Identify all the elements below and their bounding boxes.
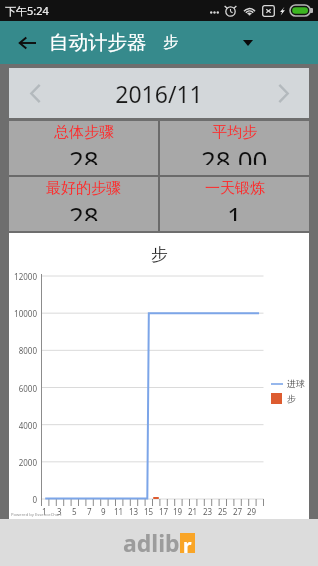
staticText: 4000: [9, 420, 37, 431]
button[interactable]: Previous month: [9, 68, 61, 118]
button[interactable]: Back: [0, 21, 49, 64]
staticText: 一天锻炼: [205, 179, 265, 198]
staticText: 12000: [9, 271, 37, 282]
staticText: 13: [129, 506, 139, 517]
staticText: 步: [287, 393, 296, 404]
staticText: 25: [218, 506, 228, 517]
staticText: 27: [233, 506, 243, 517]
staticText: 7: [87, 506, 92, 517]
staticText: 29: [247, 506, 257, 517]
staticText: 23: [203, 506, 213, 517]
staticText: 11: [114, 506, 124, 517]
button[interactable]: 一天锻炼: [160, 177, 309, 231]
button[interactable]: 最好的步骤: [9, 177, 158, 231]
staticText: 进球: [287, 378, 305, 389]
staticText: r: [183, 533, 192, 553]
staticText: 0: [9, 494, 37, 505]
staticText: 28.00: [201, 142, 268, 165]
staticText: 28: [69, 198, 99, 221]
staticText: 下午5:24: [5, 3, 49, 18]
staticText: 3: [57, 506, 62, 517]
staticText: 1: [42, 506, 47, 517]
staticText: 19: [173, 506, 183, 517]
staticText: 6000: [9, 383, 37, 394]
staticText: 最好的步骤: [46, 179, 121, 198]
staticText: 2000: [9, 457, 37, 468]
staticText: 平均步: [212, 123, 257, 142]
button[interactable]: 总体步骤: [9, 121, 158, 175]
staticText: 21: [188, 506, 198, 517]
staticText: adlib: [123, 527, 180, 558]
button[interactable]: 步: [163, 33, 178, 52]
staticText: 8000: [9, 345, 37, 356]
staticText: 5: [72, 506, 77, 517]
staticText: 总体步骤: [54, 123, 114, 142]
button[interactable]: Next month: [257, 68, 309, 118]
button[interactable]: More options: [178, 21, 318, 64]
staticText: Powered by EssenceChart: [11, 512, 62, 518]
staticText: 15: [144, 506, 154, 517]
staticText: 9: [101, 506, 106, 517]
staticText: 17: [159, 506, 169, 517]
staticText: 1: [227, 198, 242, 221]
button[interactable]: 2016/11: [61, 78, 257, 109]
button[interactable]: 自动计步器: [49, 30, 147, 55]
staticText: 步: [151, 244, 168, 265]
staticText: 10000: [9, 308, 37, 319]
staticText: 28: [69, 142, 99, 165]
button[interactable]: adlib: [0, 519, 318, 566]
button[interactable]: 平均步: [160, 121, 309, 175]
